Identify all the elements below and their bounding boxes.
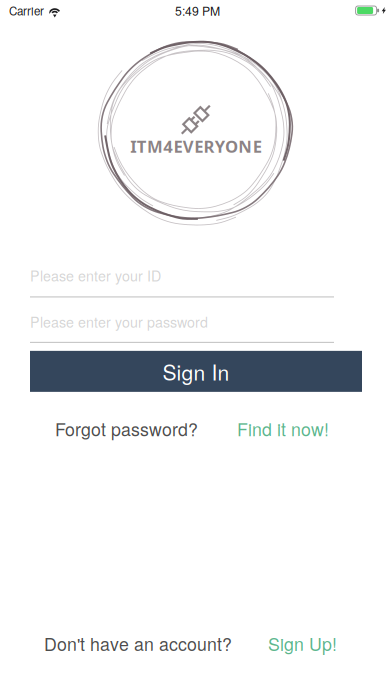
staticText: 5:49 PM — [175, 2, 220, 19]
staticText: Please enter your password — [30, 311, 208, 332]
button[interactable]: Sign Up! — [268, 631, 337, 656]
staticText: Carrier — [9, 2, 44, 19]
staticText: Forgot password? — [55, 416, 198, 441]
staticText: Find it now! — [237, 416, 329, 441]
staticText: Don't have an account? — [44, 631, 232, 656]
staticText: Please enter your ID — [30, 265, 161, 285]
button[interactable]: Sign In — [30, 351, 362, 392]
staticText: Sign Up! — [268, 631, 337, 656]
staticText: ITM4EVERYONE — [130, 135, 262, 158]
staticText: Sign In — [162, 356, 229, 386]
button[interactable]: Find it now! — [237, 416, 329, 441]
